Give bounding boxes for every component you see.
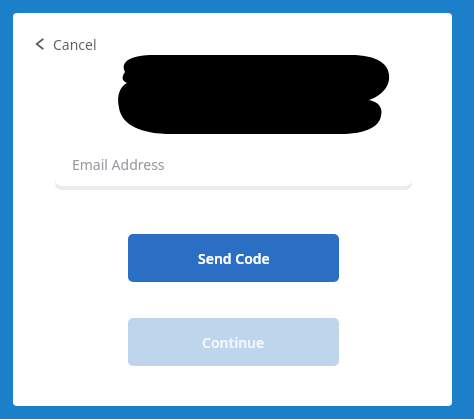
button[interactable]: Continue: [128, 318, 339, 366]
button[interactable]: Back: [27, 27, 117, 61]
staticText: Email Address: [72, 155, 165, 174]
staticText: Send Code: [198, 249, 270, 268]
other: Back: [33, 37, 47, 51]
button[interactable]: Send Code: [128, 234, 339, 282]
staticText: Continue: [202, 333, 265, 352]
staticText: Cancel: [53, 35, 97, 54]
button[interactable]: Email Address: [55, 143, 412, 186]
